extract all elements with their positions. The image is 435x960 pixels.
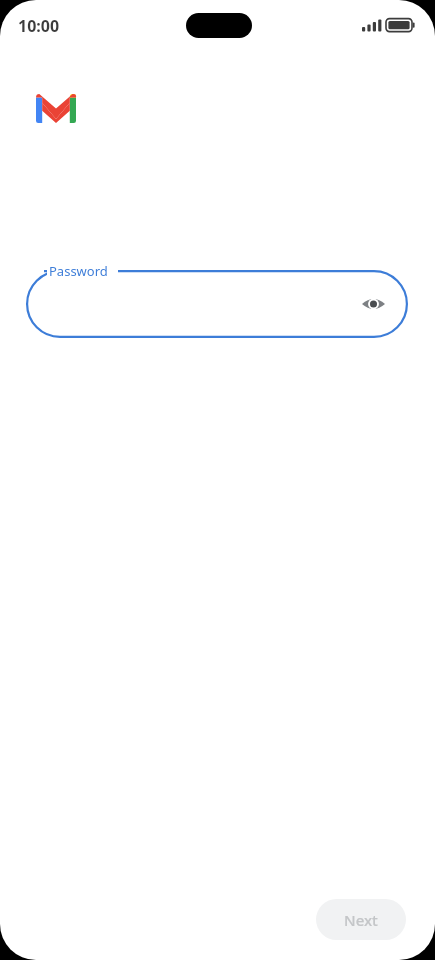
staticText: 10:00 (18, 15, 60, 37)
staticText: Password (49, 262, 108, 280)
staticText: Next (344, 910, 378, 930)
button[interactable]: Show password (356, 287, 390, 321)
button[interactable]: Password (26, 270, 408, 338)
button[interactable]: Next (316, 899, 406, 940)
